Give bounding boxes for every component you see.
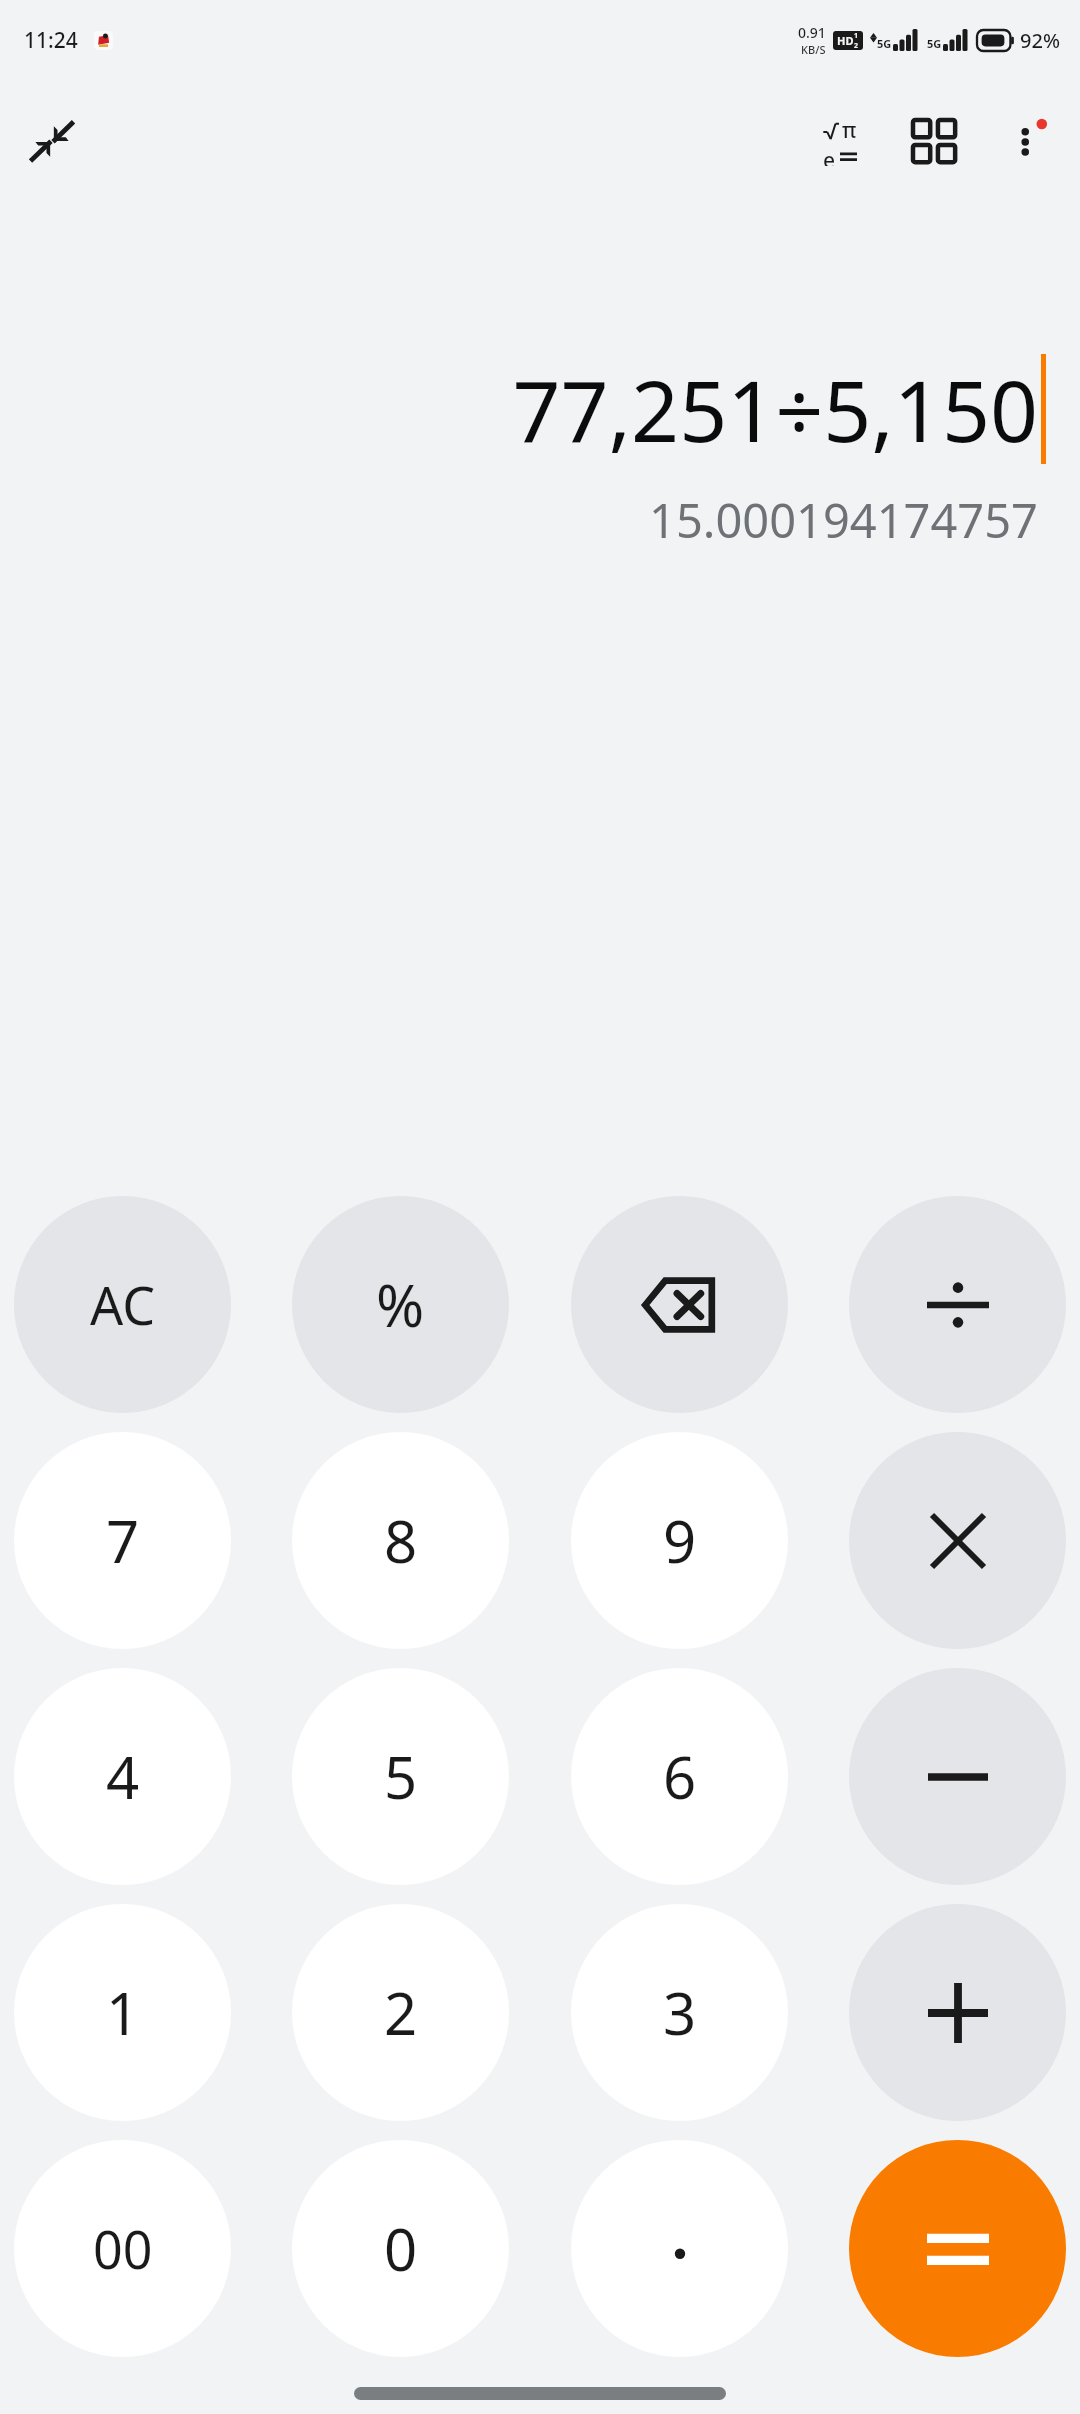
button[interactable]: 00 [14,2140,231,2357]
staticText: 77,251÷5,150 [512,352,1038,466]
staticText: 8 [384,1501,418,1580]
staticText: 9 [663,1501,697,1580]
staticText: 5 [384,1737,418,1816]
button[interactable]: Collapse [14,103,90,179]
staticText: HD [837,33,854,48]
staticText: 92% [1020,27,1060,54]
button[interactable] [849,1432,1066,1649]
button[interactable]: 0 [292,2140,509,2357]
staticText: 0.91 [798,23,826,42]
button[interactable]: 7 [14,1432,231,1649]
button[interactable]: % [292,1196,509,1413]
staticText: 4 [106,1737,140,1816]
staticText: 1 [854,31,859,41]
staticText: % [376,1265,425,1344]
button[interactable]: Equals [849,2140,1066,2357]
button[interactable]: AC [14,1196,231,1413]
staticText: 00 [93,2213,153,2284]
button[interactable]: 2 [292,1904,509,2121]
button[interactable]: 3 [571,1904,788,2121]
button[interactable]: 8 [292,1432,509,1649]
staticText: 2 [384,1973,418,2052]
staticText: 1 [106,1973,140,2052]
button[interactable]: Backspace [571,1196,788,1413]
staticText: 0 [384,2209,418,2288]
staticText: π [842,116,857,145]
staticText: e [823,146,836,166]
staticText: KB/S [801,42,826,57]
staticText: AC [90,1269,156,1340]
button[interactable] [849,1196,1066,1413]
button[interactable] [571,2140,788,2357]
button[interactable] [849,1668,1066,1885]
button[interactable]: 1 [14,1904,231,2121]
staticText: 15.000194174757 [649,488,1038,552]
staticText: 6 [663,1737,697,1816]
staticText: 3 [663,1973,697,2052]
button[interactable]: 6 [571,1668,788,1885]
staticText: 5G [927,36,942,51]
button[interactable]: More options [990,103,1066,179]
button[interactable]: Scientific mode [802,103,878,179]
staticText: 7 [106,1501,140,1580]
button[interactable]: 4 [14,1668,231,1885]
staticText: 2 [854,41,859,50]
button[interactable]: 9 [571,1432,788,1649]
button[interactable]: 5 [292,1668,509,1885]
staticText: 11:24 [24,26,78,55]
staticText: 5G [877,36,892,51]
button[interactable] [849,1904,1066,2121]
button[interactable]: Unit converter [896,103,972,179]
